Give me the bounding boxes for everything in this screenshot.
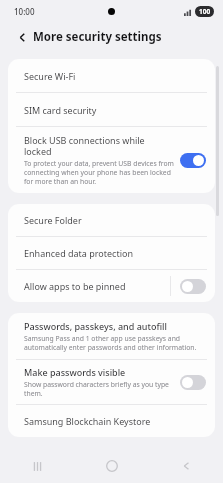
button[interactable]: Toggle on <box>180 153 206 168</box>
button[interactable]: Block USB connections while locked <box>8 127 215 193</box>
button[interactable]: Passwords, passkeys, and autofill <box>8 313 215 359</box>
staticText: Samsung Blockchain Keystore <box>24 415 151 427</box>
staticText: Allow apps to be pinned <box>24 280 126 292</box>
staticText: More security settings <box>33 29 162 45</box>
button[interactable]: SIM card security <box>8 93 215 126</box>
staticText: Passwords, passkeys, and autofill <box>24 320 167 332</box>
staticText: Enhanced data protection <box>24 247 133 259</box>
staticText: Secure Folder <box>24 214 82 226</box>
button[interactable]: Home <box>75 449 149 483</box>
staticText: To protect your data, prevent USB device… <box>24 159 174 186</box>
button[interactable]: Back <box>12 27 32 47</box>
button[interactable]: Toggle off <box>180 279 206 294</box>
staticText: 10:00 <box>14 6 35 17</box>
staticText: Show password characters briefly as you … <box>24 380 174 398</box>
button[interactable]: Allow apps to be pinned <box>8 270 215 302</box>
staticText: Secure Wi-Fi <box>24 70 76 82</box>
staticText: Samsung Pass and 1 other app use passkey… <box>24 334 206 352</box>
button[interactable]: Recents <box>0 449 75 483</box>
button[interactable]: Enhanced data protection <box>8 237 215 269</box>
staticText: Make passwords visible <box>24 366 126 378</box>
staticText: SIM card security <box>24 104 97 116</box>
button[interactable]: Toggle off <box>180 375 206 390</box>
button[interactable]: Secure Wi-Fi <box>8 59 215 92</box>
button[interactable]: Secure Folder <box>8 204 215 236</box>
button[interactable]: Make passwords visible <box>8 360 215 404</box>
staticText: Block USB connections while locked <box>24 134 174 157</box>
staticText: 100 <box>199 7 211 16</box>
button[interactable]: Samsung Blockchain Keystore <box>8 405 215 437</box>
